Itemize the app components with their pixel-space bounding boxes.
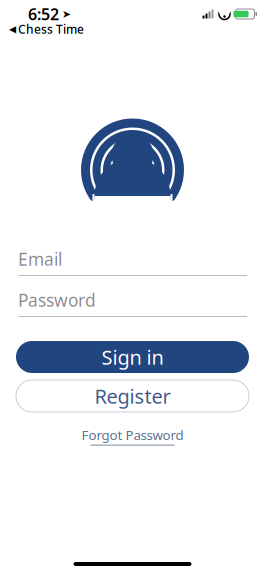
staticText: 6:52 [28, 3, 59, 25]
button[interactable]: Sign in [16, 341, 249, 373]
staticText: Chess Time [18, 21, 84, 37]
staticText: Register [94, 383, 170, 409]
staticText: Forgot Password [81, 426, 183, 444]
button[interactable]: Forgot Password [81, 426, 183, 445]
staticText: ◀ [9, 24, 16, 34]
staticText: ➤ [62, 8, 71, 20]
button[interactable]: Register [16, 380, 249, 412]
staticText: Password [18, 288, 96, 311]
staticText: Sign in [101, 344, 163, 370]
staticText: Email [18, 247, 62, 270]
